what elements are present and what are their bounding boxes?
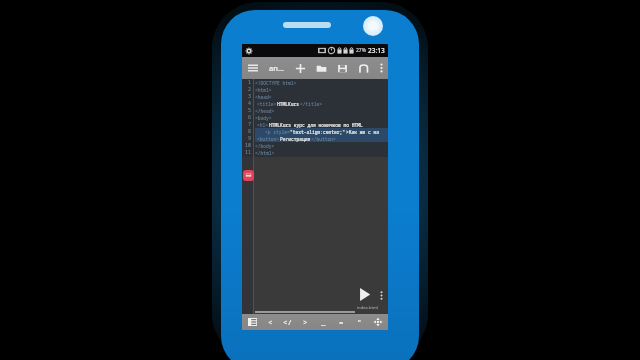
staticText: <body> xyxy=(255,115,272,121)
staticText: 9 xyxy=(248,135,252,142)
staticText: <h1> xyxy=(257,122,269,128)
button[interactable]: Undo xyxy=(353,57,374,79)
button[interactable]: _ xyxy=(314,314,332,330)
staticText: <p style= xyxy=(265,129,290,135)
staticText: 1 xyxy=(248,79,252,86)
button[interactable]: </ xyxy=(279,314,296,330)
staticText: > xyxy=(303,317,308,327)
button[interactable]: Run options xyxy=(377,289,385,301)
staticText: 8 xyxy=(248,128,252,135)
button[interactable]: Keyboard xyxy=(242,314,262,330)
staticText: 7 xyxy=(248,121,252,128)
staticText: </html> xyxy=(255,150,275,156)
staticText: = xyxy=(339,317,344,327)
staticText: an… xyxy=(269,63,285,73)
staticText: <head> xyxy=(255,94,272,100)
button[interactable]: Move xyxy=(368,314,388,330)
staticText: _ xyxy=(321,317,326,327)
staticText: < xyxy=(268,317,273,327)
staticText: Регистрация xyxy=(280,136,311,142)
staticText: </body> xyxy=(255,143,275,149)
staticText: HTMLKurs xyxy=(277,101,300,107)
staticText: <title> xyxy=(257,101,277,107)
staticText: 10 xyxy=(245,142,252,149)
button[interactable]: New file xyxy=(290,57,311,79)
staticText: 3 xyxy=(248,93,252,100)
button[interactable]: Open xyxy=(311,57,332,79)
staticText: >Как же с на xyxy=(346,129,380,135)
staticText: HTMLKurs курс для новичков по HTML xyxy=(269,122,363,128)
staticText: " xyxy=(357,317,362,327)
button[interactable]: " xyxy=(350,314,368,330)
staticText: <html> xyxy=(255,87,272,93)
staticText: <button> xyxy=(257,136,280,142)
staticText: 2 xyxy=(248,86,252,93)
button[interactable]: Run xyxy=(356,286,372,302)
staticText: </ xyxy=(283,317,292,327)
button[interactable]: Save xyxy=(332,57,353,79)
staticText: 6 xyxy=(248,114,252,121)
staticText: 11 xyxy=(245,149,252,156)
button[interactable]: More options xyxy=(374,57,388,79)
staticText: 5 xyxy=(248,107,252,114)
button[interactable]: an… xyxy=(264,57,290,79)
staticText: </button> xyxy=(311,136,336,142)
staticText: 4 xyxy=(248,100,252,107)
staticText: <!DOCTYPE html> xyxy=(255,80,297,86)
staticText: </head> xyxy=(255,108,275,114)
staticText: index.html xyxy=(357,305,378,311)
staticText: 23:13 xyxy=(368,46,385,55)
button[interactable]: Menu xyxy=(242,57,264,79)
button[interactable]: = xyxy=(332,314,350,330)
other: Settings notification xyxy=(245,47,253,55)
staticText: </title> xyxy=(300,101,323,107)
button[interactable]: < xyxy=(262,314,279,330)
button[interactable]: Error marker xyxy=(243,170,254,181)
button[interactable]: > xyxy=(296,314,314,330)
staticText: 27% xyxy=(356,47,366,54)
staticText: "text-align:center;" xyxy=(290,129,346,135)
